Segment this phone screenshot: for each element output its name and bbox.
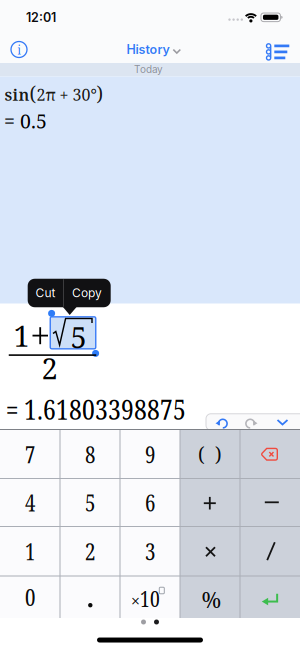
button[interactable]: Info	[8, 38, 30, 60]
staticText: Copy	[72, 286, 102, 300]
button[interactable]: ( )	[181, 431, 239, 477]
button[interactable]: 3	[121, 527, 179, 575]
staticText: 4	[25, 486, 35, 518]
staticText: = 0.5	[4, 108, 47, 134]
button[interactable]: plus	[181, 479, 239, 525]
staticText: 2	[42, 348, 58, 388]
button[interactable]: 6	[121, 479, 179, 525]
button[interactable]: divide	[241, 527, 299, 575]
staticText: %	[201, 584, 221, 614]
button[interactable]: Dismiss keyboard	[274, 416, 290, 428]
button[interactable]: times ten to the power	[121, 577, 179, 617]
button[interactable]: History entry sin(2π + 30°) = 0.5	[0, 76, 300, 303]
button[interactable]: Return	[241, 577, 299, 617]
staticText: 9	[145, 438, 155, 470]
staticText: 2	[85, 535, 95, 567]
button[interactable]: 0	[1, 577, 59, 617]
button[interactable]: 7	[1, 431, 59, 477]
staticText: 1	[25, 535, 35, 567]
staticText: 7	[25, 438, 35, 470]
button[interactable]: 1	[1, 527, 59, 575]
button[interactable]: History	[126, 42, 181, 57]
button[interactable]: Cut	[28, 279, 63, 306]
button[interactable]: minus	[241, 479, 299, 525]
button[interactable]: multiply	[181, 527, 239, 575]
button[interactable]: 9	[121, 431, 179, 477]
button[interactable]: 4	[1, 479, 59, 525]
staticText: Today	[134, 63, 163, 75]
button[interactable]: 5	[61, 479, 119, 525]
button[interactable]: 2	[61, 527, 119, 575]
staticText: 6	[145, 486, 155, 518]
button[interactable]: percent	[181, 577, 239, 617]
staticText: 8	[85, 438, 95, 470]
staticText: ×10	[131, 584, 160, 613]
button[interactable]: decimal point	[61, 577, 119, 617]
staticText: 12:01	[26, 10, 56, 25]
staticText: History	[126, 42, 169, 57]
button[interactable]: 8	[61, 431, 119, 477]
staticText: sin(2π + 30°)	[4, 81, 103, 106]
staticText: Cut	[35, 286, 55, 300]
staticText: i	[17, 41, 20, 58]
button[interactable]: Copy	[64, 279, 110, 306]
staticText: 0	[25, 581, 35, 613]
staticText: = 1.61803398875	[6, 390, 186, 428]
staticText: 1	[13, 316, 29, 355]
button[interactable]: Delete	[241, 431, 299, 477]
staticText: 3	[145, 535, 155, 567]
button[interactable]: Edit list	[266, 42, 290, 58]
staticText: 5	[85, 486, 95, 518]
staticText: ( )	[198, 441, 222, 467]
staticText: 5	[70, 317, 86, 357]
button[interactable]: Redo	[244, 416, 259, 430]
button[interactable]: Undo	[214, 416, 229, 430]
